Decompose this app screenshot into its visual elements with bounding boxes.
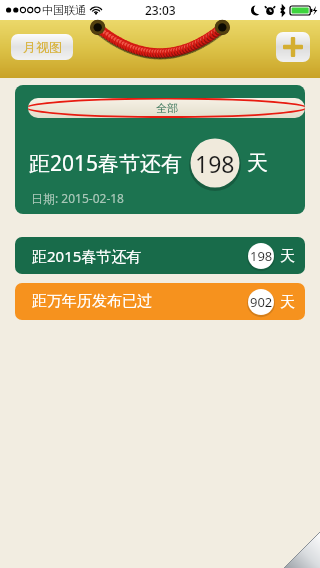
button[interactable]: 月视图 (11, 34, 73, 60)
button[interactable]: 全部 (15, 85, 305, 214)
staticText: 902 (250, 293, 273, 311)
button[interactable]: 距万年历发布已过 (15, 283, 305, 320)
staticText: 月视图 (23, 39, 62, 55)
button[interactable]: Add (276, 32, 310, 62)
staticText: 198 (250, 247, 273, 265)
staticText: 全部 (156, 101, 178, 115)
staticText: 天 (280, 293, 295, 312)
staticText: 天 (247, 150, 268, 176)
button[interactable]: 距2015春节还有 (15, 237, 305, 274)
button[interactable]: 全部 (28, 98, 305, 118)
staticText: 距万年历发布已过 (32, 292, 152, 311)
staticText: 天 (280, 247, 295, 266)
staticText: 距2015春节还有 (29, 149, 183, 178)
staticText: 日期: 2015-02-18 (31, 190, 124, 206)
staticText: 中国联通 (42, 3, 86, 17)
staticText: 距2015春节还有 (32, 246, 142, 266)
staticText: 23:03 (145, 2, 176, 18)
staticText: 198 (195, 148, 235, 179)
